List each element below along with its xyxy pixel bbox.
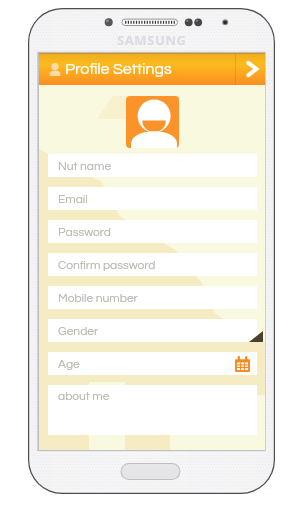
button[interactable]: Mobile number [48,286,257,309]
staticText: Mobile number [58,292,138,304]
staticText: Gender [58,325,99,337]
staticText: about me [58,390,110,402]
button[interactable]: Gender [48,319,257,342]
button[interactable]: Profile photo [126,96,179,148]
button[interactable]: Email [48,187,257,210]
staticText: SAMSUNG [117,31,187,49]
staticText: Age [58,358,80,370]
button[interactable]: Confirm password [48,253,257,276]
staticText: Email [58,193,88,205]
staticText: Nut name [58,160,112,172]
staticText: Profile Settings [65,61,172,77]
button[interactable]: Profile Settings [39,53,235,85]
button[interactable]: Age [48,352,257,375]
button[interactable]: Password [48,220,257,243]
staticText: Password [58,226,111,238]
button[interactable]: about me [48,385,257,435]
button[interactable]: Nut name [48,154,257,177]
staticText: Confirm password [58,259,156,271]
button[interactable]: Next [235,53,265,85]
